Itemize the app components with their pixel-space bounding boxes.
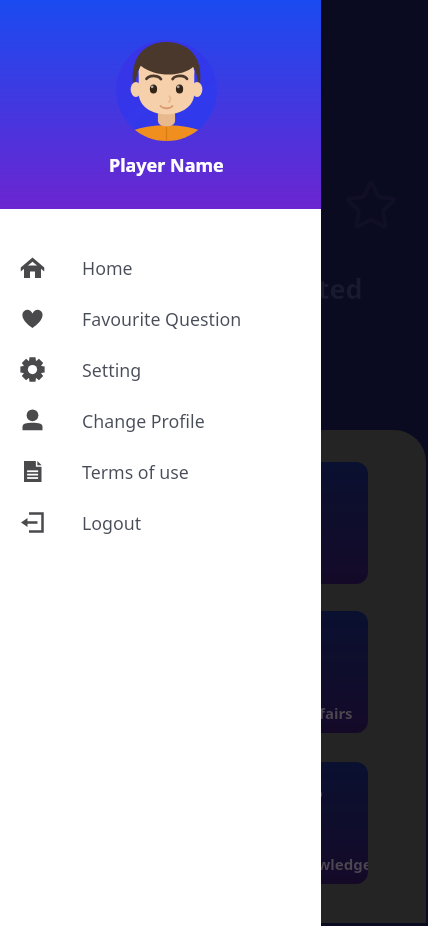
button[interactable]: Current Affairs bbox=[226, 611, 368, 733]
button[interactable]: Terms of use bbox=[0, 446, 321, 497]
button[interactable]: Change Profile bbox=[0, 395, 321, 446]
staticText: Current Affairs bbox=[241, 703, 353, 723]
staticText: Home bbox=[82, 256, 133, 280]
button[interactable]: Setting bbox=[0, 344, 321, 395]
staticText: Let's Get Started bbox=[138, 270, 363, 307]
button[interactable]: General Knowledge bbox=[226, 762, 368, 884]
button[interactable]: Sports bbox=[226, 462, 368, 584]
staticText: General Knowledge bbox=[226, 854, 368, 874]
staticText: Logout bbox=[82, 511, 142, 535]
button[interactable]: Favourite Question bbox=[0, 293, 321, 344]
button[interactable]: Maths bbox=[60, 462, 202, 584]
staticText: Favourite Question bbox=[82, 307, 242, 331]
button[interactable]: Logout bbox=[0, 497, 321, 548]
button[interactable]: Home bbox=[0, 242, 321, 293]
staticText: Terms of use bbox=[82, 460, 189, 484]
staticText: Setting bbox=[82, 358, 142, 382]
staticText: Change Profile bbox=[82, 409, 205, 433]
staticText: Player Name bbox=[109, 153, 224, 178]
